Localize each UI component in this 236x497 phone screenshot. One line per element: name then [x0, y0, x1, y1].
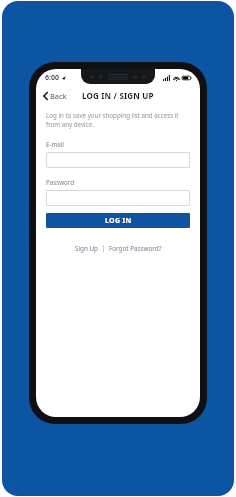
button[interactable]: Sign Up	[70, 241, 103, 256]
staticText: 6:00	[45, 73, 59, 83]
button[interactable]: Forgot Password?	[104, 241, 167, 256]
staticText: E-mail	[46, 140, 64, 148]
staticText: Log in to save your shopping list and ac…	[46, 111, 190, 129]
button[interactable]: Text input	[46, 190, 190, 206]
staticText: LOG IN	[105, 216, 132, 226]
button[interactable]: Back	[36, 88, 73, 104]
staticText: Forgot Password?	[109, 244, 162, 253]
staticText: Sign Up	[75, 244, 98, 253]
staticText: Password	[46, 178, 74, 186]
button[interactable]: LOG IN	[46, 213, 190, 228]
button[interactable]: Text input	[46, 152, 190, 168]
staticText: Back	[50, 91, 67, 101]
staticText: LOG IN / SIGN UP	[82, 90, 154, 101]
